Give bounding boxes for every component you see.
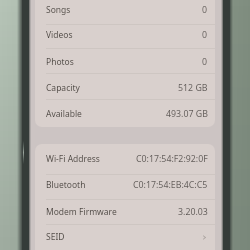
button[interactable]: Videos	[35, 24, 215, 48]
staticText: Wi-Fi Address	[46, 153, 100, 165]
other: Open SEID details	[201, 234, 208, 241]
staticText: SEID	[46, 231, 65, 243]
button[interactable]: Modem Firmware	[35, 199, 215, 224]
button[interactable]: SEID	[35, 224, 215, 250]
staticText: 3.20.03	[178, 206, 208, 218]
button[interactable]: Bluetooth	[35, 174, 215, 199]
staticText: Modem Firmware	[46, 206, 117, 218]
staticText: Available	[46, 108, 82, 120]
button[interactable]: Available	[35, 99, 215, 127]
button[interactable]: Photos	[35, 48, 215, 73]
staticText: Videos	[46, 29, 73, 41]
staticText: 0	[202, 29, 208, 41]
staticText: Songs	[46, 4, 71, 16]
staticText: C0:17:54:F2:92:0F	[136, 153, 208, 165]
button[interactable]: Wi-Fi Address	[35, 144, 215, 174]
staticText: Photos	[46, 56, 74, 68]
staticText: Bluetooth	[46, 179, 86, 191]
staticText: 493.07 GB	[166, 108, 208, 120]
button[interactable]: Songs	[35, 0, 215, 24]
button[interactable]: Capacity	[35, 73, 215, 99]
staticText: C0:17:54:EB:4C:C5	[133, 179, 208, 191]
staticText: 0	[202, 56, 208, 68]
staticText: Capacity	[46, 82, 80, 94]
staticText: 512 GB	[178, 82, 208, 94]
staticText: 0	[202, 4, 208, 16]
